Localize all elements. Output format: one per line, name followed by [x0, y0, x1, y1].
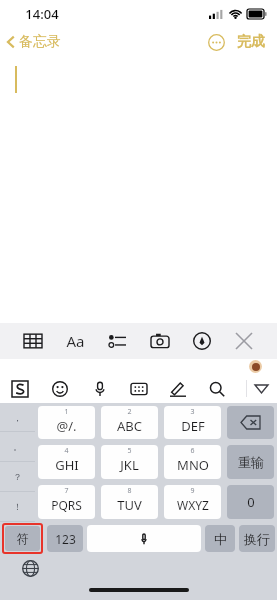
staticText: ！ [13, 501, 22, 512]
button[interactable]: Hide keyboard [236, 374, 277, 403]
staticText: GHI [55, 456, 79, 474]
button[interactable]: Camera [145, 326, 175, 356]
staticText: PQRS [51, 497, 82, 513]
staticText: 7 [64, 486, 69, 496]
button[interactable]: 2 [101, 406, 158, 439]
staticText: 中 [214, 531, 227, 547]
button[interactable]: Markup [187, 326, 217, 356]
staticText: 2 [127, 407, 132, 417]
button[interactable]: 中 [205, 525, 235, 552]
staticText: 换行 [244, 531, 270, 547]
button[interactable]: ！ [0, 492, 35, 521]
staticText: 0 [247, 493, 255, 511]
button[interactable]: Checklist [102, 326, 132, 356]
button[interactable]: 9 [164, 485, 221, 519]
staticText: ， [13, 412, 22, 423]
staticText: 8 [127, 486, 132, 496]
staticText: DEF [181, 417, 205, 435]
button[interactable]: ， [0, 403, 35, 431]
button[interactable]: Space and voice input [87, 525, 201, 552]
button[interactable]: Sogou input [0, 374, 40, 403]
other: Back [7, 35, 15, 49]
staticText: 6 [190, 446, 195, 456]
button[interactable]: Close keyboard [229, 326, 259, 356]
staticText: WXYZ [177, 497, 209, 513]
staticText: Aa [66, 331, 85, 351]
staticText: MNO [177, 456, 209, 474]
staticText: ABC [117, 417, 142, 435]
button[interactable]: Back [0, 30, 69, 54]
staticText: 5 [127, 446, 132, 456]
staticText: 3 [190, 407, 195, 417]
button[interactable]: More options [208, 34, 225, 51]
staticText: 符 [17, 531, 29, 546]
button[interactable]: 8 [101, 485, 158, 519]
staticText: 9 [190, 486, 195, 496]
staticText: ？ [13, 471, 22, 482]
button[interactable]: 7 [38, 485, 95, 519]
button[interactable]: Switch language [22, 560, 39, 577]
button[interactable]: 1 [38, 406, 95, 439]
staticText: TUV [117, 496, 142, 514]
staticText: 123 [55, 531, 76, 547]
staticText: 14:04 [25, 5, 59, 23]
button[interactable]: 换行 [239, 525, 275, 552]
staticText: 1 [64, 407, 69, 417]
staticText: 备忘录 [19, 33, 61, 51]
button[interactable]: Handwriting [158, 374, 197, 403]
staticText: 4 [64, 446, 69, 456]
button[interactable]: 符 [5, 526, 40, 551]
button[interactable]: Emoji [40, 374, 80, 403]
button[interactable]: 0 [227, 485, 274, 519]
staticText: 完成 [237, 33, 265, 51]
staticText: JKL [120, 456, 139, 474]
button[interactable]: 完成 [234, 29, 268, 55]
button[interactable]: 4 [38, 445, 95, 479]
button[interactable]: Delete [227, 406, 274, 439]
button[interactable]: 6 [164, 445, 221, 479]
staticText: @/. [56, 417, 77, 435]
button[interactable]: Text format [60, 326, 90, 356]
button[interactable]: ？ [0, 462, 35, 491]
button[interactable]: 123 [47, 525, 83, 552]
button[interactable]: Keyboard settings [119, 374, 158, 403]
button[interactable]: 3 [164, 406, 221, 439]
staticText: 重输 [238, 454, 264, 470]
button[interactable]: 5 [101, 445, 158, 479]
button[interactable]: 重输 [227, 445, 274, 479]
button[interactable]: Search [197, 374, 236, 403]
button[interactable]: Insert table [18, 326, 48, 356]
button[interactable]: Voice input [80, 374, 119, 403]
staticText: 。 [13, 441, 22, 452]
